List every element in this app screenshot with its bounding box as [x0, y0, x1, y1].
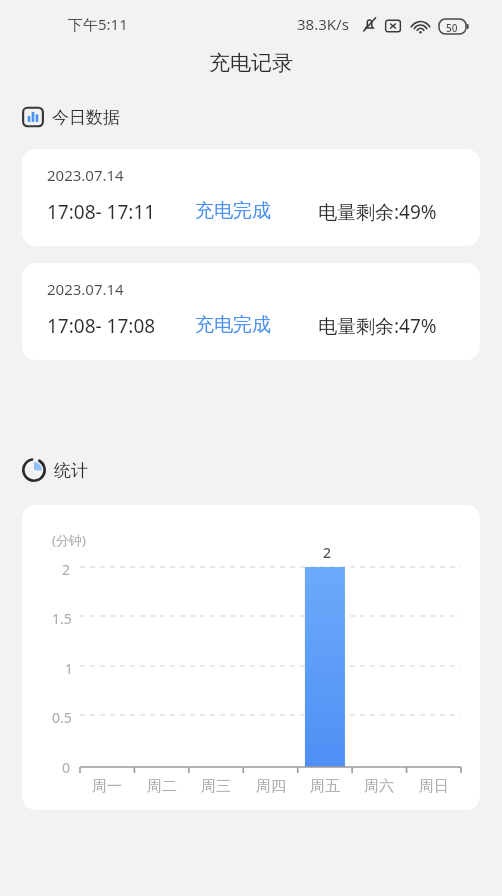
staticText: 今日数据 [52, 107, 120, 128]
staticText: 38.3K/s [297, 14, 349, 34]
staticText: 0 [62, 758, 71, 777]
staticText: 周四 [256, 777, 286, 796]
staticText: 50 [446, 21, 458, 35]
staticText: 0.5 [52, 708, 72, 727]
staticText: 电量剩余:47% [318, 313, 437, 339]
staticText: 充电完成 [195, 199, 271, 223]
staticText: 周一 [92, 777, 122, 796]
button[interactable]: 2023.07.14 [22, 149, 480, 246]
staticText: 2 [62, 560, 71, 579]
staticText: 周三 [201, 777, 231, 796]
staticText: 17:08- 17:08 [47, 313, 156, 339]
staticText: 2023.07.14 [47, 165, 124, 185]
staticText: 周二 [147, 777, 177, 796]
staticText: 1 [65, 659, 74, 678]
staticText: 充电记录 [209, 50, 293, 76]
staticText: 充电完成 [195, 313, 271, 337]
staticText: 统计 [54, 460, 88, 481]
staticText: (分钟) [52, 531, 86, 549]
staticText: 2023.07.14 [47, 279, 124, 299]
staticText: 电量剩余:49% [318, 199, 437, 225]
staticText: 周日 [419, 777, 449, 796]
staticText: 17:08- 17:11 [47, 199, 156, 225]
staticText: 2 [323, 543, 332, 562]
button[interactable]: 2023.07.14 [22, 263, 480, 360]
staticText: 下午5:11 [68, 14, 128, 34]
staticText: 1.5 [52, 609, 72, 628]
staticText: 周六 [364, 777, 394, 796]
staticText: 周五 [310, 777, 340, 796]
